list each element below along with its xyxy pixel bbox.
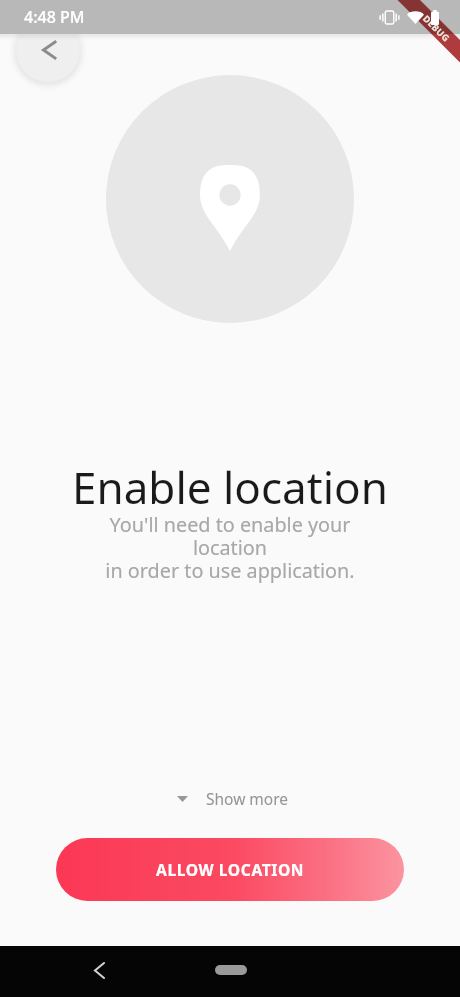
staticText: ALLOW LOCATION	[156, 859, 305, 880]
button[interactable]: ALLOW LOCATION	[56, 838, 404, 901]
button[interactable]: Back	[16, 18, 80, 82]
staticText: You'll need to enable your location in o…	[104, 511, 356, 584]
staticText: Enable location	[72, 457, 388, 517]
staticText: 4:48 PM	[24, 6, 85, 28]
button[interactable]: Show more	[165, 782, 301, 815]
button[interactable]: Home	[215, 965, 247, 975]
button[interactable]: Back	[79, 950, 119, 990]
staticText: Show more	[206, 788, 289, 809]
